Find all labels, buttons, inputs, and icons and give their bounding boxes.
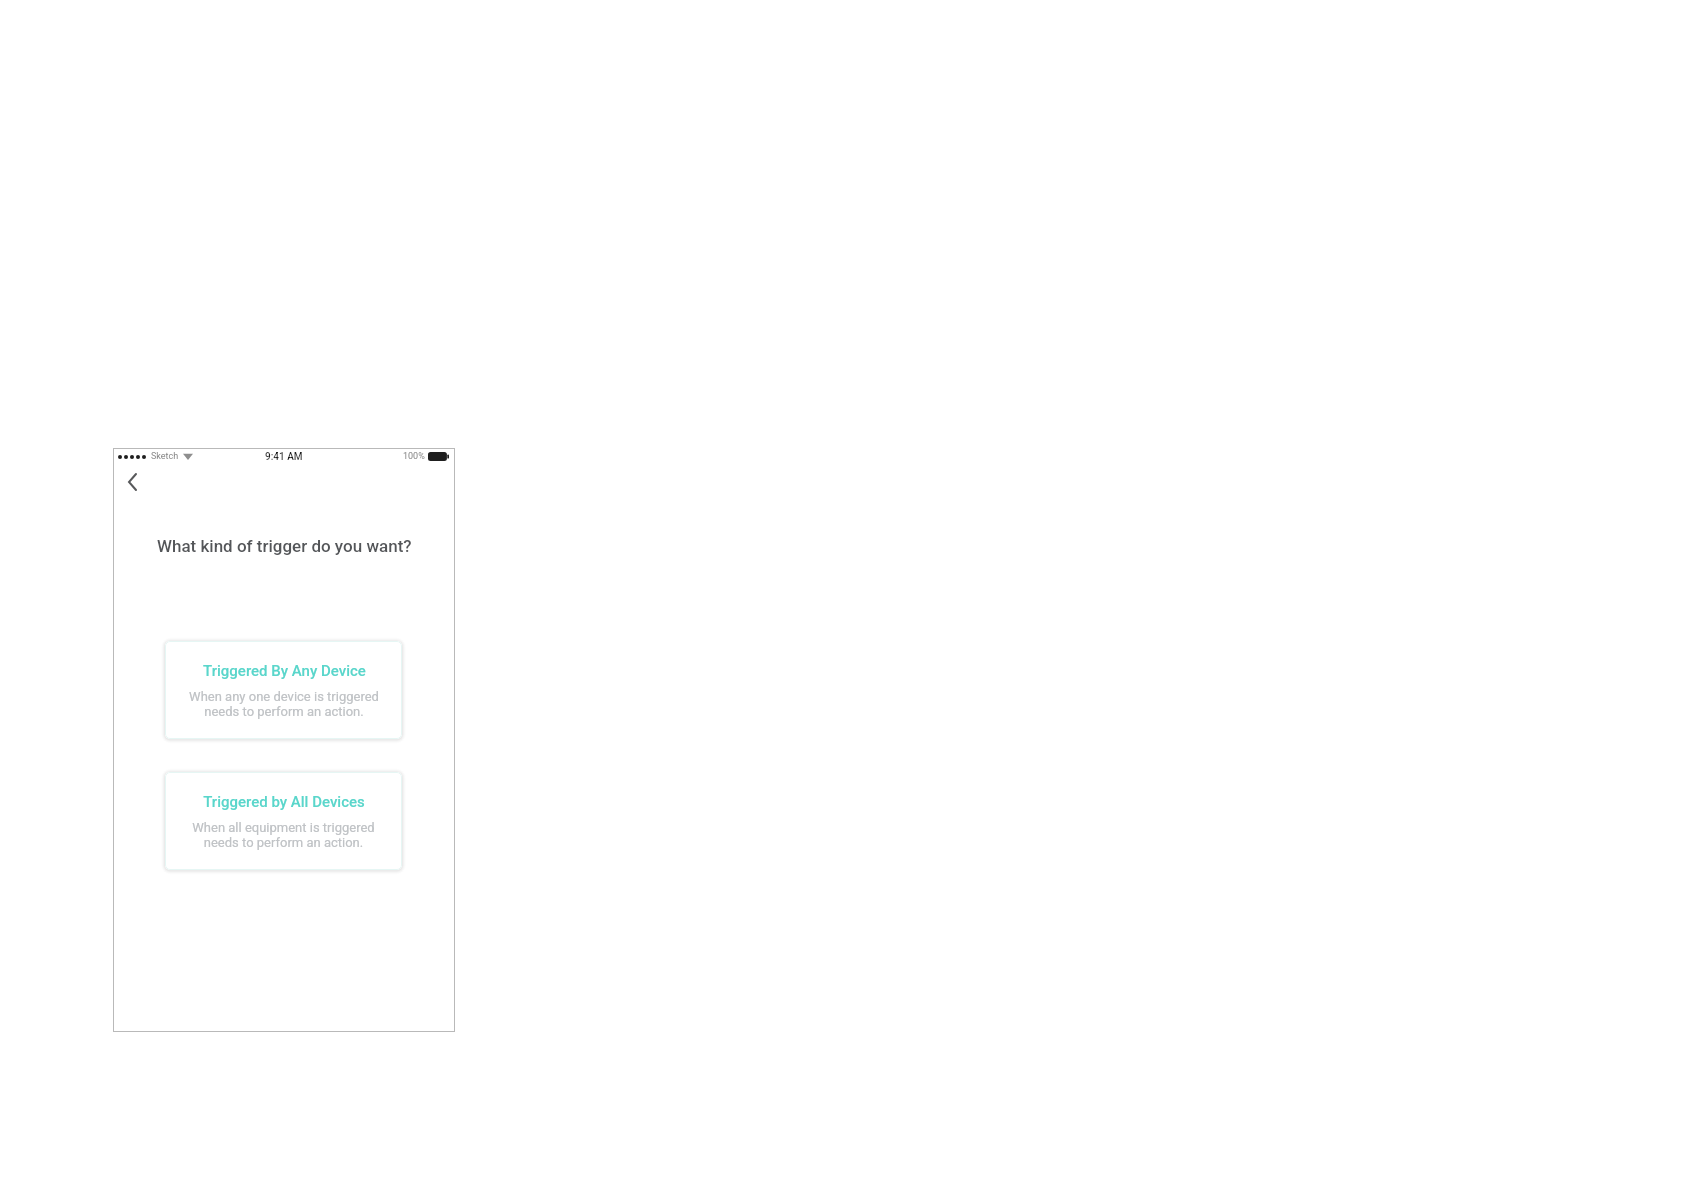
button[interactable]: Triggered By Any Device	[165, 641, 402, 739]
button[interactable]: Back	[114, 464, 150, 500]
staticText: When any one device is triggered needs t…	[189, 689, 379, 719]
button[interactable]: Triggered by All Devices	[165, 772, 402, 870]
staticText: Triggered by All Devices	[203, 793, 365, 811]
staticText: 100%	[403, 451, 425, 462]
staticText: Sketch	[151, 451, 179, 462]
staticText: When all equipment is triggered needs to…	[192, 820, 375, 850]
staticText: What kind of trigger do you want?	[157, 536, 412, 556]
staticText: 9:41 AM	[265, 451, 303, 463]
staticText: Triggered By Any Device	[203, 662, 366, 680]
